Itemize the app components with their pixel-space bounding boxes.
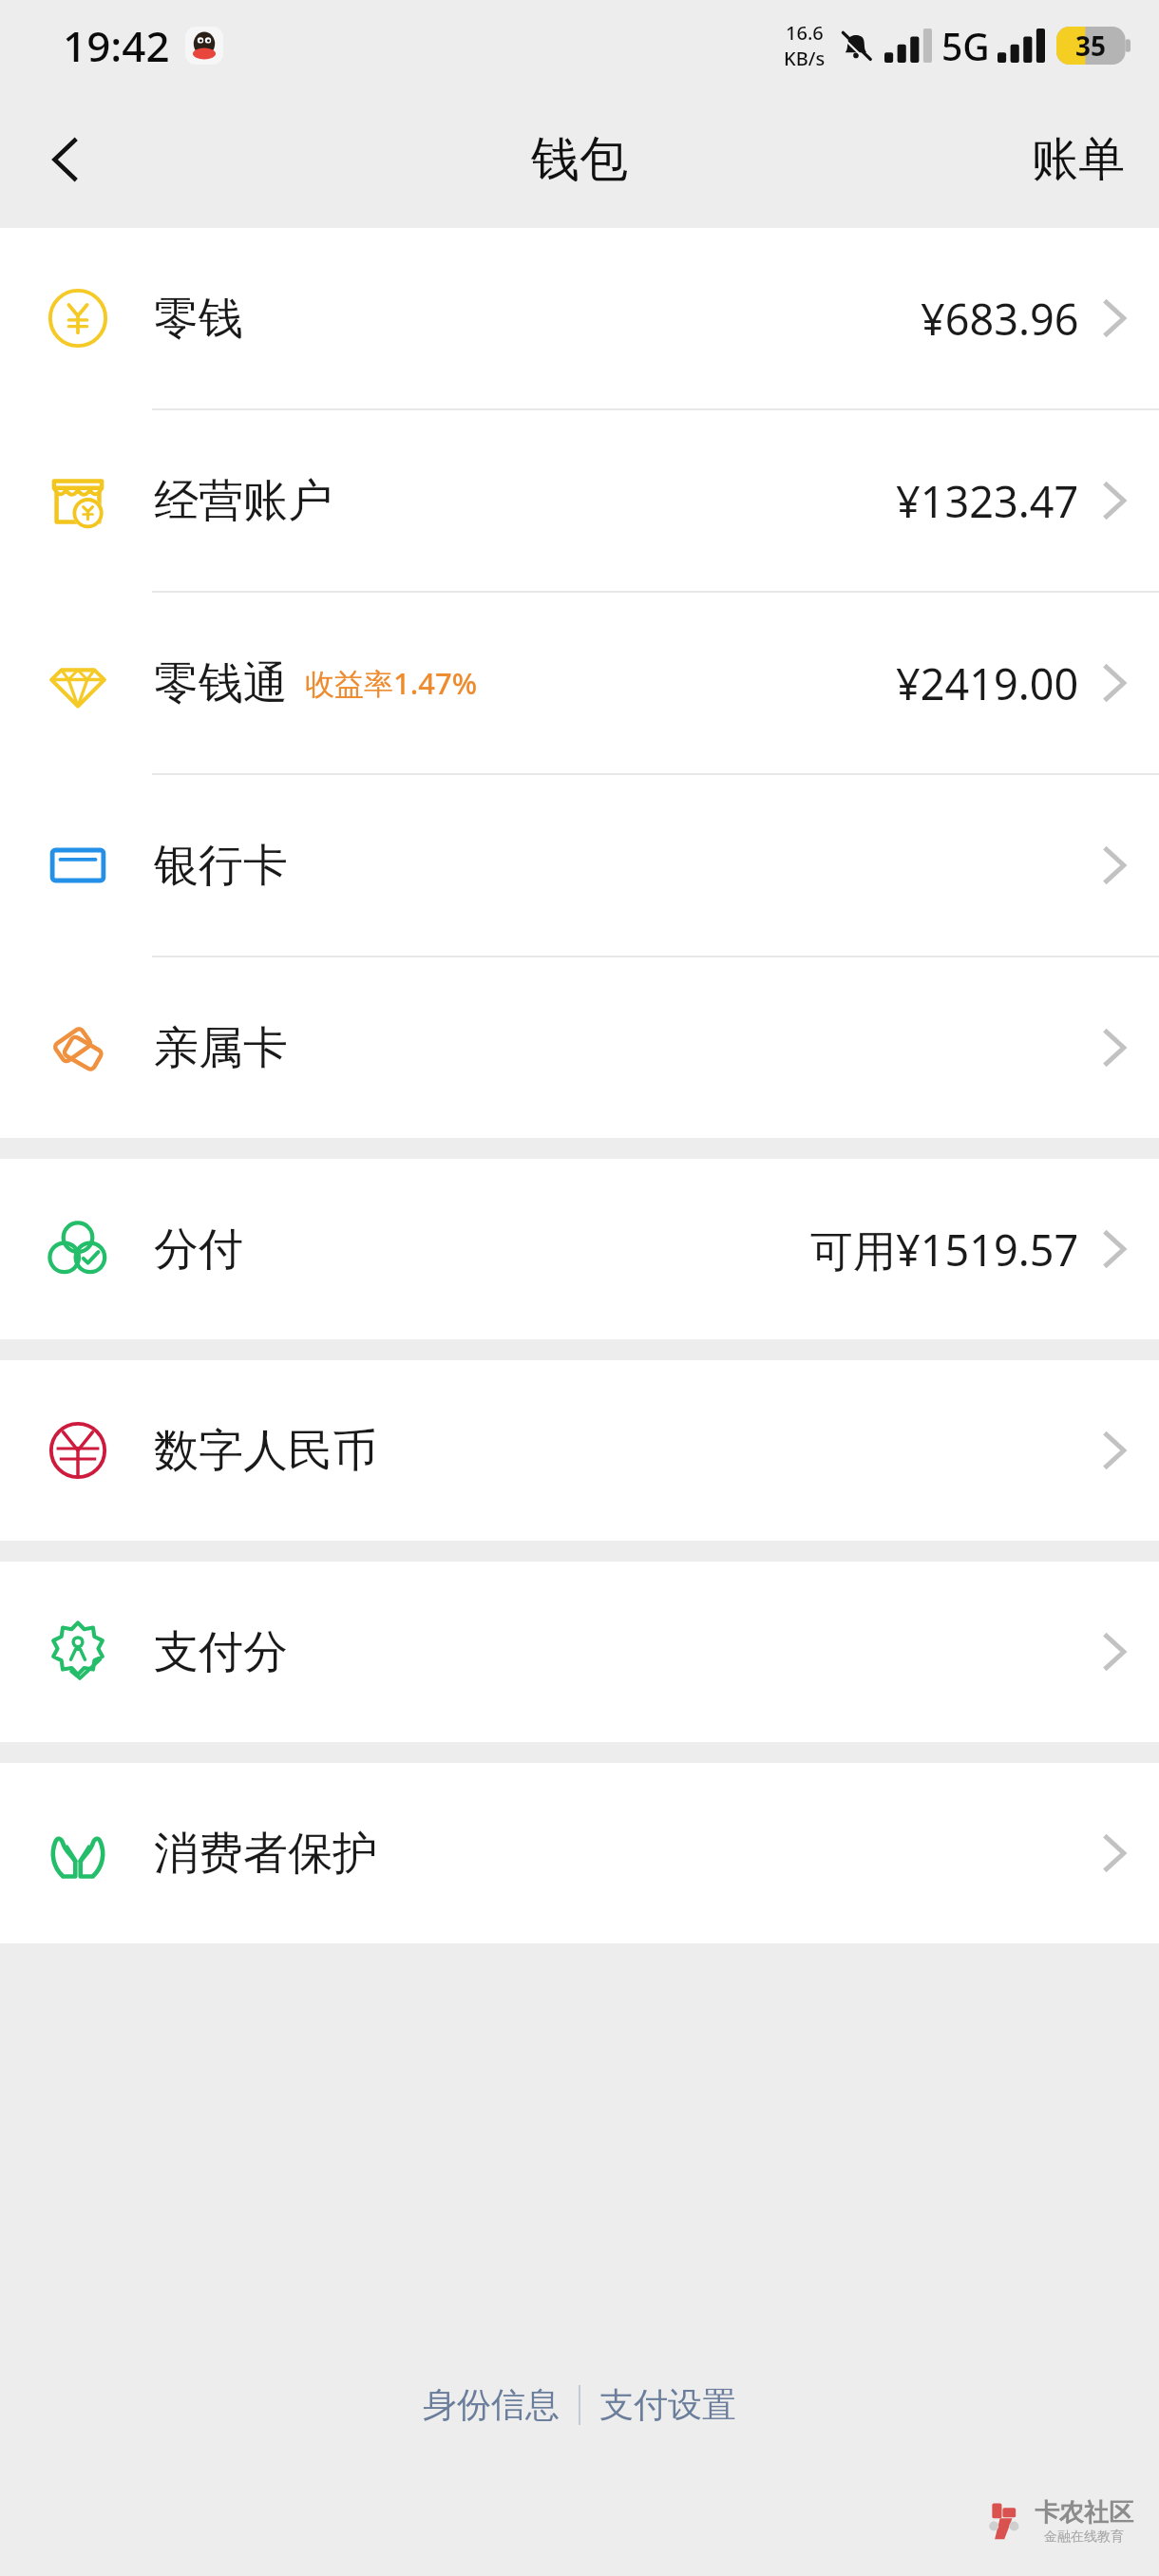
staticText: KB/s bbox=[784, 46, 826, 71]
staticText: 分付 bbox=[154, 1222, 243, 1278]
staticText: ¥2419.00 bbox=[896, 654, 1079, 712]
staticText: 5G bbox=[941, 21, 990, 71]
staticText: 金融在线教育 bbox=[1044, 2529, 1124, 2546]
staticText: 支付设置 bbox=[599, 2383, 736, 2426]
staticText: 零钱通 bbox=[154, 655, 288, 711]
button[interactable]: 银行卡 bbox=[0, 775, 1159, 956]
staticText: 消费者保护 bbox=[154, 1826, 377, 1882]
button[interactable]: 支付分 bbox=[0, 1562, 1159, 1742]
staticText: 数字人民币 bbox=[154, 1423, 377, 1479]
button[interactable]: 分付 bbox=[0, 1159, 1159, 1339]
staticText: 账单 bbox=[1032, 130, 1125, 189]
staticText: 16.6 bbox=[786, 20, 824, 46]
button[interactable]: 零钱通 bbox=[0, 593, 1159, 773]
button[interactable]: 零钱 bbox=[0, 228, 1159, 408]
staticText: 亲属卡 bbox=[154, 1020, 288, 1076]
button[interactable]: 支付设置 bbox=[580, 2374, 755, 2435]
staticText: 收益率1.47% bbox=[305, 663, 478, 703]
staticText: 零钱 bbox=[154, 291, 243, 347]
staticText: 支付分 bbox=[154, 1624, 288, 1680]
button[interactable]: 经营账户 bbox=[0, 410, 1159, 591]
staticText: ¥1323.47 bbox=[896, 472, 1079, 530]
staticText: 钱包 bbox=[531, 129, 628, 190]
staticText: 35 bbox=[1075, 28, 1107, 64]
staticText: ¥683.96 bbox=[921, 290, 1079, 348]
button[interactable]: 消费者保护 bbox=[0, 1763, 1159, 1943]
staticText: 19:42 bbox=[63, 17, 170, 74]
button[interactable]: 返回 bbox=[19, 113, 112, 206]
staticText: 银行卡 bbox=[154, 838, 288, 894]
button[interactable]: 身份信息 bbox=[404, 2374, 579, 2435]
staticText: 卡农社区 bbox=[1035, 2497, 1133, 2529]
staticText: 身份信息 bbox=[423, 2383, 560, 2426]
staticText: 经营账户 bbox=[154, 473, 332, 529]
button[interactable]: 数字人民币 bbox=[0, 1360, 1159, 1541]
button[interactable]: 账单 bbox=[1015, 119, 1142, 200]
button[interactable]: 亲属卡 bbox=[0, 957, 1159, 1138]
staticText: 可用¥1519.57 bbox=[810, 1221, 1079, 1279]
